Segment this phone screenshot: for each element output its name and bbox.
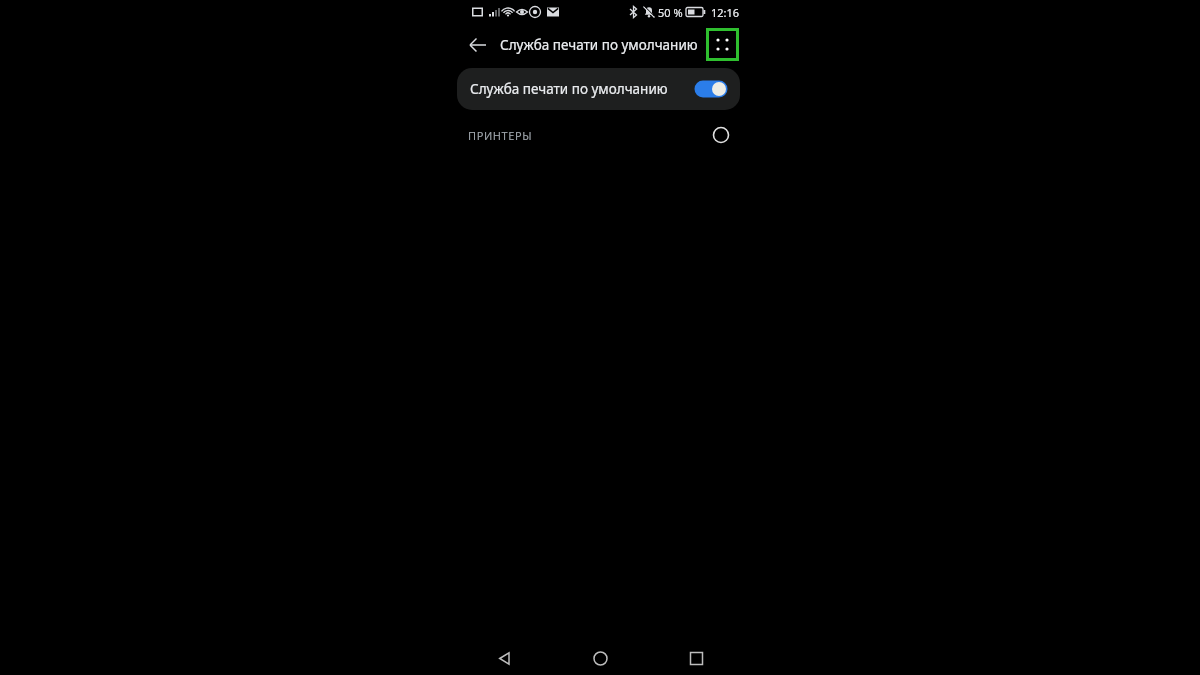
button[interactable]: Back	[461, 28, 494, 61]
staticText: Служба печати по умолчанию	[500, 36, 698, 54]
button[interactable]: Home	[552, 640, 648, 675]
other: Loading	[712, 126, 730, 144]
button[interactable]: Recent apps	[648, 640, 744, 675]
staticText: 12:16	[711, 5, 740, 20]
staticText: 50 %	[658, 5, 683, 20]
staticText: Служба печати по умолчанию	[470, 80, 668, 98]
button[interactable]: Служба печати по умолчанию	[457, 68, 740, 110]
staticText: ПРИНТЕРЫ	[468, 128, 533, 143]
button[interactable]: Back	[456, 640, 552, 675]
button[interactable]: More options	[706, 28, 739, 61]
